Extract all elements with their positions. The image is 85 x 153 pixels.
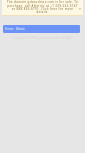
- button[interactable]: About: [16, 27, 25, 31]
- staticText: The domain gdsouchips.com is for sale. T…: [3, 0, 82, 13]
- button[interactable]: Home: [3, 25, 80, 33]
- staticText: ×: [79, 6, 82, 10]
- staticText: Copyright © 2016 gdsouchips.com. All Rig…: [0, 36, 85, 40]
- button[interactable]: Close: [78, 6, 82, 10]
- staticText: Home: [5, 27, 14, 31]
- staticText: About: [16, 27, 25, 31]
- button[interactable]: Home: [5, 27, 14, 31]
